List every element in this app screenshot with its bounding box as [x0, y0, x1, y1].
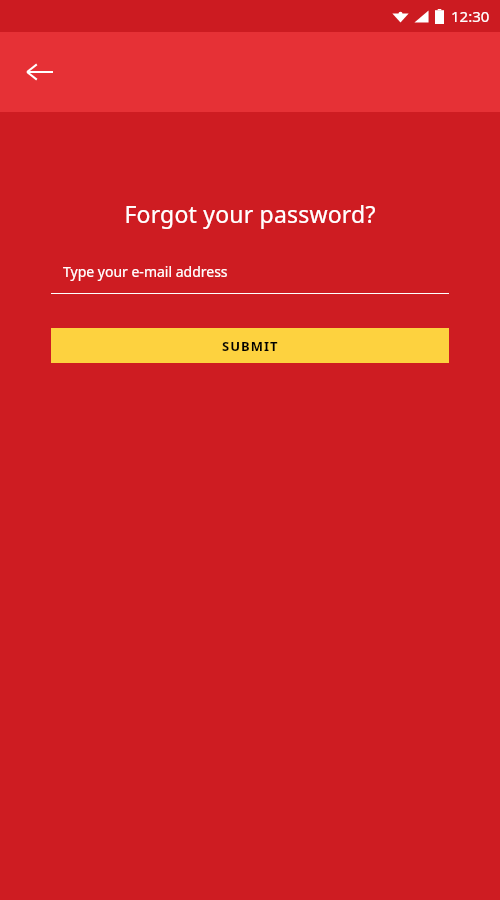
button[interactable]: Back — [15, 48, 63, 96]
staticText: SUBMIT — [222, 337, 279, 355]
button[interactable]: Type your e-mail address — [51, 260, 449, 294]
staticText: Forgot your password? — [0, 198, 500, 229]
staticText: 12:30 — [451, 6, 490, 26]
staticText: Type your e-mail address — [63, 262, 228, 281]
button[interactable]: SUBMIT — [51, 328, 449, 363]
